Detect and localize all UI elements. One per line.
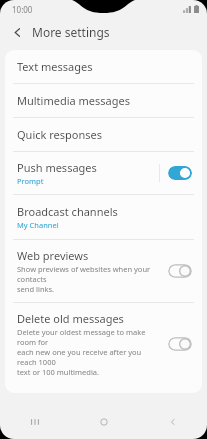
button[interactable]: Broadcast channels <box>5 195 202 239</box>
staticText: Multimedia messages <box>17 93 130 108</box>
button[interactable]: Delete old messages <box>5 303 202 385</box>
button[interactable]: Delete old messages <box>168 337 192 351</box>
button[interactable]: Quick responses <box>5 118 202 151</box>
staticText: Text messages <box>17 59 93 74</box>
button[interactable]: Push messages <box>5 152 202 194</box>
button[interactable]: Recents <box>0 405 69 439</box>
button[interactable]: Back <box>138 405 207 439</box>
staticText: My Channel <box>17 220 59 230</box>
button[interactable]: Text messages <box>5 50 202 83</box>
staticText: Web previews <box>17 248 89 263</box>
button[interactable]: Back <box>6 21 28 43</box>
button[interactable]: Home <box>69 405 138 439</box>
button[interactable]: Web previews <box>168 264 192 278</box>
button[interactable]: Multimedia messages <box>5 84 202 117</box>
staticText: Prompt <box>17 176 44 186</box>
staticText: Quick responses <box>17 127 102 142</box>
staticText: More settings <box>32 24 110 40</box>
button[interactable]: Web previews <box>5 240 202 302</box>
button[interactable]: Push messages <box>168 166 192 180</box>
staticText: Delete your oldest message to make room … <box>17 327 162 377</box>
staticText: Broadcast channels <box>17 204 118 219</box>
staticText: Show previews of websites when your cont… <box>17 264 162 294</box>
staticText: Delete old messages <box>17 311 124 326</box>
staticText: 10:00 <box>12 4 33 15</box>
staticText: Push messages <box>17 160 97 175</box>
